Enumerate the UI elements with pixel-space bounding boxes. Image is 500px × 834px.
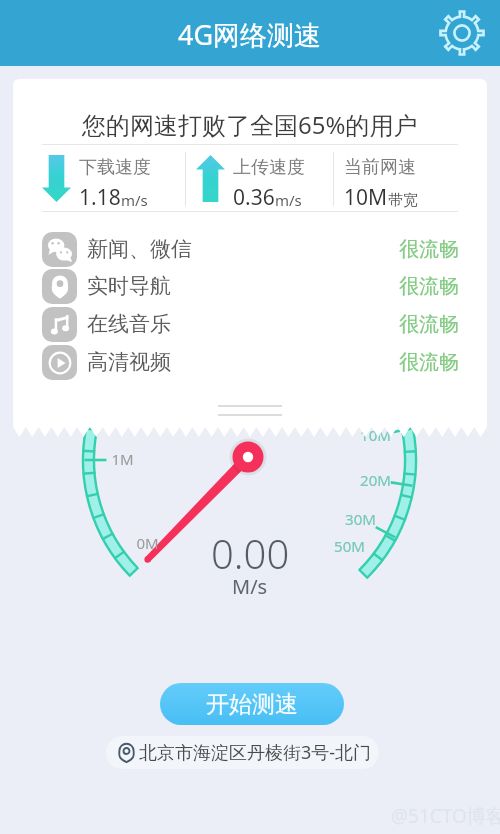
- staticText: 30M: [345, 509, 376, 529]
- button[interactable]: 高清视频: [42, 343, 459, 381]
- staticText: @51CTO博客: [391, 803, 500, 829]
- staticText: m/s: [275, 190, 302, 210]
- staticText: 您的网速打败了全国65%的用户: [82, 108, 418, 141]
- button[interactable]: 实时导航: [42, 267, 459, 305]
- staticText: 上传速度: [233, 156, 305, 179]
- staticText: 开始测速: [206, 690, 298, 719]
- staticText: 实时导航: [87, 273, 171, 299]
- button[interactable]: 开始测速: [160, 683, 344, 725]
- staticText: 下载速度: [79, 156, 151, 179]
- staticText: 20M: [360, 470, 391, 490]
- staticText: 0.36: [233, 183, 275, 211]
- button[interactable]: 新闻、微信: [42, 230, 459, 268]
- staticText: 0.00: [211, 526, 290, 580]
- staticText: 很流畅: [399, 274, 459, 299]
- staticText: 在线音乐: [87, 311, 171, 337]
- button[interactable]: 北京市海淀区丹棱街3号-北门: [106, 736, 379, 769]
- staticText: 10M: [360, 425, 391, 445]
- button[interactable]: Settings: [438, 9, 486, 57]
- staticText: 很流畅: [399, 237, 459, 262]
- staticText: 新闻、微信: [87, 236, 192, 262]
- staticText: 1.18: [79, 183, 121, 211]
- staticText: 高清视频: [87, 349, 171, 375]
- staticText: 带宽: [388, 191, 418, 210]
- staticText: M/s: [232, 573, 268, 600]
- staticText: 当前网速: [344, 156, 416, 179]
- button[interactable]: 在线音乐: [42, 305, 459, 343]
- staticText: m/s: [121, 190, 148, 210]
- staticText: 50M: [334, 536, 365, 556]
- staticText: 1M: [111, 449, 134, 469]
- staticText: 10M: [344, 183, 388, 211]
- staticText: 很流畅: [399, 350, 459, 375]
- staticText: 0M: [136, 533, 159, 553]
- staticText: 北京市海淀区丹棱街3号-北门: [139, 740, 372, 765]
- staticText: 很流畅: [399, 312, 459, 337]
- staticText: 4G网络测速: [178, 16, 322, 53]
